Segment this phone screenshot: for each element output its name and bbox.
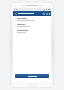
button[interactable]: Navigate up (14, 12, 17, 15)
button[interactable]: Add (45, 12, 48, 15)
button[interactable] (15, 74, 49, 78)
button[interactable]: More options (48, 13, 50, 15)
button[interactable] (15, 18, 49, 22)
button[interactable]: Search (42, 12, 45, 15)
button[interactable] (15, 30, 49, 34)
button[interactable] (15, 24, 49, 28)
